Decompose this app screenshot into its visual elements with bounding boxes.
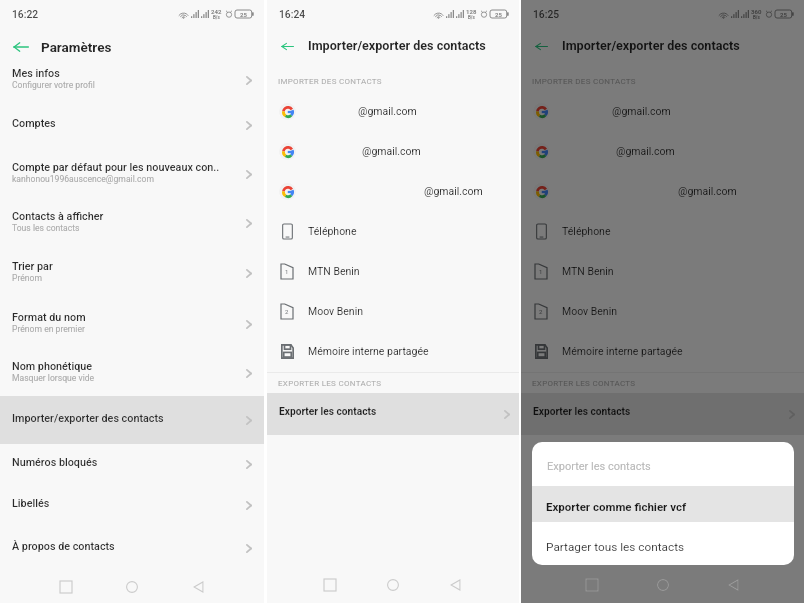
staticText: Exporter les contacts <box>547 460 651 473</box>
staticText: Importer/exporter des contacts <box>12 412 164 425</box>
button[interactable]: À propos de contacts <box>0 527 264 570</box>
staticText: Moov Benin <box>562 305 618 317</box>
staticText: À propos de contacts <box>12 540 115 553</box>
button[interactable]: Mes infos <box>0 59 264 102</box>
staticText: Paramètres <box>41 39 112 55</box>
button[interactable]: Nom phonétique <box>0 350 264 396</box>
staticText: IMPORTER DES CONTACTS <box>532 77 636 86</box>
button[interactable]: Home <box>361 567 424 603</box>
button[interactable]: Exporter comme fichier vcf <box>532 486 794 522</box>
button[interactable]: Compte par défaut pour les nouveaux con.… <box>0 149 264 199</box>
staticText: MTN Benin <box>308 265 360 277</box>
staticText: @gmail.com <box>358 105 417 117</box>
button[interactable]: Home <box>99 570 165 603</box>
staticText: MTN Benin <box>562 265 614 277</box>
button[interactable]: @gmail.com <box>267 171 519 211</box>
staticText: 2 <box>539 308 543 315</box>
staticText: Masquer lorsque vide <box>12 373 95 383</box>
staticText: 25 <box>240 11 247 18</box>
staticText: @gmail.com <box>616 145 675 157</box>
staticText: 128 <box>466 8 477 15</box>
staticText: Mes infos <box>12 67 60 80</box>
staticText: Téléphone <box>308 225 357 237</box>
staticText: Nom phonétique <box>12 360 93 373</box>
button[interactable]: Exporter les contacts <box>521 393 804 435</box>
staticText: @gmail.com <box>678 185 737 197</box>
staticText: Importer/exporter des contacts <box>308 38 486 53</box>
button[interactable]: Partager tous les contacts <box>532 522 794 564</box>
staticText: Moov Benin <box>308 305 364 317</box>
staticText: Prénom <box>12 273 42 283</box>
staticText: @gmail.com <box>362 145 421 157</box>
button[interactable]: @gmail.com <box>267 91 519 131</box>
button[interactable]: Back <box>281 36 294 56</box>
staticText: 25 <box>780 11 787 18</box>
staticText: 2 <box>285 308 289 315</box>
staticText: 25 <box>495 11 502 18</box>
button[interactable]: 1 <box>267 251 519 291</box>
staticText: kanhonou1996auscence@gmail.com <box>12 174 154 184</box>
staticText: Exporter comme fichier vcf <box>546 500 687 513</box>
button[interactable]: Recent apps <box>298 567 361 603</box>
button[interactable]: Format du nom <box>0 299 264 350</box>
button[interactable]: Back <box>424 567 487 603</box>
staticText: Numéros bloqués <box>12 456 98 469</box>
staticText: 16:24 <box>279 8 306 20</box>
staticText: Libellés <box>12 497 50 510</box>
button[interactable]: Recent apps <box>33 570 99 603</box>
button[interactable]: Back <box>535 36 548 56</box>
button[interactable]: Comptes <box>0 102 264 149</box>
staticText: Importer/exporter des contacts <box>562 38 740 53</box>
button[interactable]: Importer/exporter des contacts <box>0 396 264 444</box>
staticText: Comptes <box>12 117 56 130</box>
button[interactable]: 2 <box>521 291 804 331</box>
staticText: Trier par <box>12 260 53 273</box>
button[interactable]: @gmail.com <box>267 131 519 171</box>
staticText: Mémoire interne partagée <box>562 345 683 357</box>
button[interactable]: 1 <box>521 251 804 291</box>
staticText: Téléphone <box>562 225 611 237</box>
staticText: B/s <box>213 15 220 20</box>
button[interactable]: Trier par <box>0 248 264 299</box>
staticText: Configurer votre profil <box>12 80 95 90</box>
button[interactable]: Mémoire interne partagée <box>521 331 804 371</box>
staticText: 16:22 <box>12 8 39 20</box>
button[interactable]: Libellés <box>0 484 264 527</box>
staticText: Partager tous les contacts <box>546 540 685 554</box>
button[interactable]: Téléphone <box>267 211 519 251</box>
button[interactable]: @gmail.com <box>521 171 804 211</box>
button[interactable]: Contacts à afficher <box>0 199 264 248</box>
staticText: @gmail.com <box>424 185 483 197</box>
staticText: Compte par défaut pour les nouveaux con.… <box>12 161 220 174</box>
staticText: 242 <box>211 8 222 15</box>
staticText: 16:25 <box>533 8 560 20</box>
staticText: 1 <box>539 268 543 275</box>
staticText: @gmail.com <box>612 105 671 117</box>
staticText: Mémoire interne partagée <box>308 345 429 357</box>
staticText: Tous les contacts <box>12 223 80 233</box>
button[interactable]: Mémoire interne partagée <box>267 331 519 371</box>
staticText: IMPORTER DES CONTACTS <box>278 77 382 86</box>
button[interactable]: Back <box>13 37 29 57</box>
button[interactable]: Numéros bloqués <box>0 444 264 484</box>
button[interactable]: 2 <box>267 291 519 331</box>
staticText: Prénom en premier <box>12 324 85 334</box>
staticText: B/s <box>753 15 760 20</box>
staticText: Contacts à afficher <box>12 210 104 223</box>
staticText: 360 <box>751 8 762 15</box>
staticText: Exporter les contacts <box>533 406 631 418</box>
staticText: Exporter les contacts <box>279 406 377 418</box>
button[interactable]: Téléphone <box>521 211 804 251</box>
staticText: Format du nom <box>12 311 86 324</box>
button[interactable]: Exporter les contacts <box>267 393 519 435</box>
button[interactable]: @gmail.com <box>521 131 804 171</box>
button[interactable]: @gmail.com <box>521 91 804 131</box>
button[interactable]: Back <box>165 570 231 603</box>
staticText: B/s <box>468 15 475 20</box>
